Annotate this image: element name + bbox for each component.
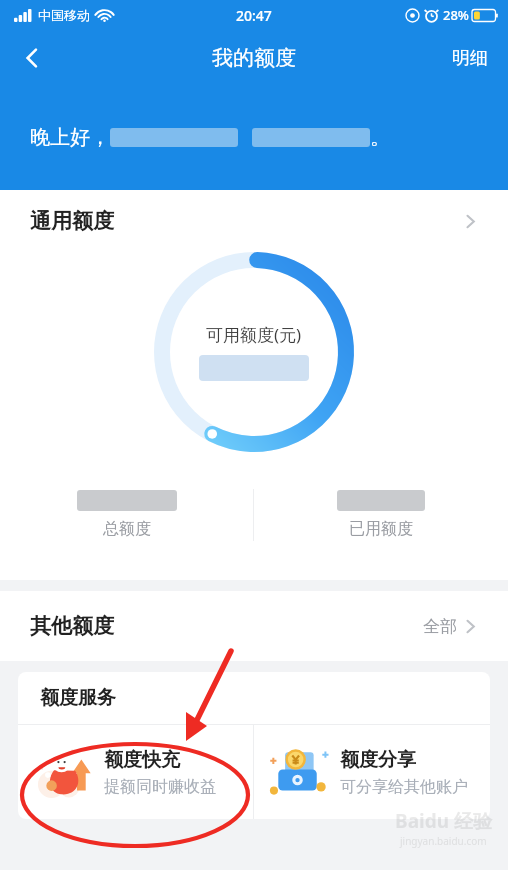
button[interactable]: 额度快充 <box>18 725 253 819</box>
staticText: 28% <box>443 6 469 24</box>
staticText: 晚上好， <box>30 125 110 150</box>
staticText: 已用额度 <box>349 519 413 539</box>
button[interactable]: Back <box>8 34 56 82</box>
staticText: 额度分享 <box>340 748 416 772</box>
staticText: Baidu 经验 <box>395 808 492 834</box>
staticText: 。 <box>370 125 390 150</box>
staticText: 额度服务 <box>40 686 116 710</box>
staticText: 可分享给其他账户 <box>340 777 468 797</box>
staticText: jingyan.baidu.com <box>400 834 487 848</box>
staticText: 20:47 <box>236 6 272 25</box>
button[interactable]: 总额度 <box>0 490 253 539</box>
button[interactable]: 明细 <box>442 39 498 78</box>
button[interactable]: 已用额度 <box>254 490 508 539</box>
staticText: 可用额度(元) <box>206 323 302 346</box>
staticText: 总额度 <box>103 519 151 539</box>
staticText: 全部 <box>423 616 457 637</box>
staticText: 其他额度 <box>30 613 114 639</box>
staticText: 我的额度 <box>212 45 296 71</box>
button[interactable]: 额度分享 <box>254 725 490 819</box>
button[interactable]: 其他额度 <box>0 591 508 661</box>
button[interactable]: 通用额度 <box>0 190 508 252</box>
staticText: 中国移动 <box>38 7 90 23</box>
staticText: 明细 <box>452 47 488 70</box>
staticText: 提额同时赚收益 <box>104 777 216 797</box>
staticText: 通用额度 <box>30 208 114 234</box>
staticText: 额度快充 <box>104 748 180 772</box>
